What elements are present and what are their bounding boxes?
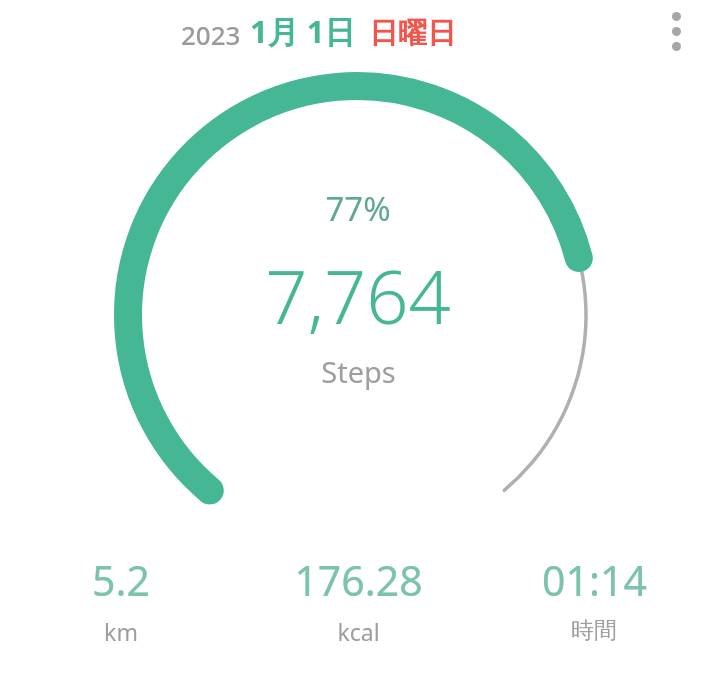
staticText: 176.28 (294, 552, 423, 608)
staticText: kcal (337, 616, 380, 647)
button[interactable]: 176.28 (243, 552, 473, 647)
button[interactable]: 2023 (181, 10, 456, 52)
staticText: 5.2 (92, 552, 150, 608)
staticText: 7,764 (265, 245, 451, 346)
button[interactable]: 5.2 (6, 552, 236, 647)
button[interactable]: 01:14 (479, 552, 709, 645)
staticText: km (104, 616, 138, 647)
staticText: 01:14 (542, 552, 647, 608)
button[interactable]: More options (637, 0, 715, 62)
staticText: 日曜日 (369, 15, 456, 52)
staticText: 2023 (181, 17, 241, 52)
staticText: Steps (321, 352, 396, 391)
staticText: 時間 (571, 616, 617, 645)
staticText: 77% (325, 186, 391, 231)
staticText: 1月 1日 (250, 10, 356, 52)
